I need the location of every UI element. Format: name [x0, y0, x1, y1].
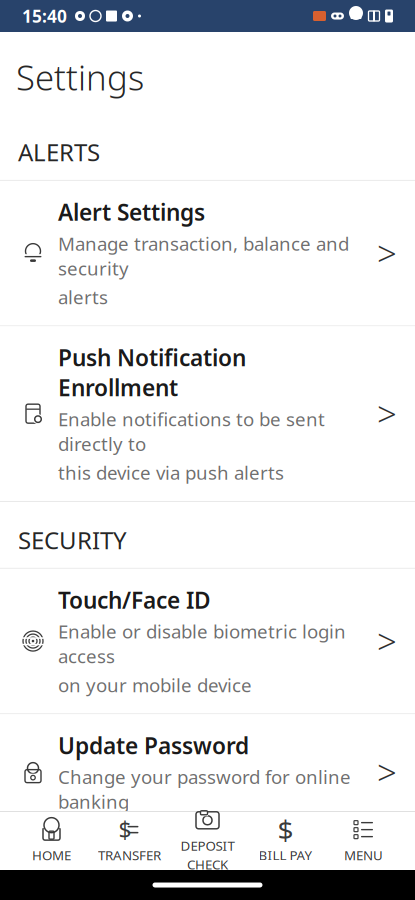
- staticText: SECURITY: [18, 524, 127, 556]
- staticText: Update Password: [58, 730, 249, 760]
- staticText: Manage transaction, balance and security: [58, 231, 349, 281]
- staticText: $: [277, 811, 293, 848]
- button[interactable]: Update Password: [0, 714, 415, 830]
- button[interactable]: $: [90, 812, 168, 870]
- button[interactable]: HOME: [12, 812, 90, 870]
- staticText: BILL PAY: [258, 846, 312, 864]
- staticText: CHECK: [187, 855, 228, 873]
- button[interactable]: Push Notification Enrollment: [0, 326, 415, 501]
- button[interactable]: DEPOSIT: [168, 812, 246, 870]
- staticText: this device via push alerts: [58, 460, 284, 485]
- staticText: >: [377, 230, 397, 276]
- staticText: MENU: [344, 846, 383, 864]
- staticText: Enable notifications to be sent directly…: [58, 407, 325, 456]
- staticText: Touch/Face ID: [58, 585, 211, 615]
- staticText: Change your password for online banking: [58, 764, 351, 814]
- staticText: >: [377, 866, 397, 900]
- staticText: on your mobile device: [58, 672, 252, 697]
- staticText: Update your login ID for online banking: [58, 881, 333, 900]
- staticText: $: [118, 815, 131, 845]
- staticText: Settings: [16, 54, 144, 100]
- staticText: Alert Settings: [58, 197, 205, 227]
- button[interactable]: Touch/Face ID: [0, 569, 415, 713]
- staticText: TRANSFER: [98, 846, 161, 864]
- staticText: Update Login ID: [58, 847, 235, 877]
- staticText: DEPOSIT: [180, 837, 234, 854]
- staticText: Enable or disable biometric login access: [58, 619, 346, 668]
- staticText: Push Notification Enrollment: [58, 342, 246, 403]
- button[interactable]: Update Login ID: [0, 831, 415, 900]
- staticText: ALERTS: [18, 136, 100, 168]
- staticText: HOME: [32, 846, 71, 864]
- staticText: >: [377, 749, 397, 795]
- button[interactable]: MENU: [324, 812, 402, 870]
- staticText: >: [377, 618, 397, 664]
- staticText: 15:40: [22, 4, 67, 27]
- button[interactable]: Alert Settings: [0, 181, 415, 325]
- staticText: >: [377, 391, 397, 437]
- button[interactable]: $: [246, 812, 324, 870]
- staticText: alerts: [58, 285, 108, 309]
